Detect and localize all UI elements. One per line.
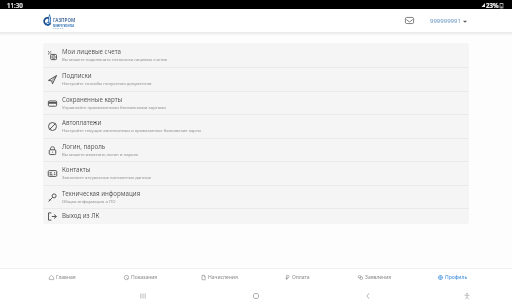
staticText: Сохраненные карты [62, 95, 123, 103]
staticText: Автоплатежи [62, 118, 102, 126]
button[interactable]: Оплата [258, 269, 336, 286]
staticText: Настройте текущие автоплатежи и привязан… [62, 127, 202, 133]
staticText: Профиль [445, 274, 468, 281]
staticText: Оплата [292, 274, 310, 281]
staticText: Т О М С К [53, 27, 64, 29]
button[interactable]: Показания [102, 269, 180, 286]
button[interactable]: Сохраненные карты [43, 91, 469, 115]
button[interactable]: Техническая информация [43, 185, 469, 209]
staticText: Логин, пароль [62, 142, 106, 150]
staticText: Контакты [62, 165, 91, 173]
button[interactable]: Recents [138, 291, 148, 301]
staticText: Выход из ЛК [62, 211, 100, 219]
staticText: Подписки [62, 71, 92, 79]
staticText: Управляйте привязанными банковскими карт… [62, 104, 166, 110]
button[interactable]: Back [363, 291, 373, 301]
button[interactable]: Accessibility [462, 291, 472, 301]
staticText: 11:30 [7, 1, 23, 9]
staticText: 999999991 [430, 17, 461, 25]
staticText: Главная [56, 274, 76, 281]
staticText: Вы можете изменить логин и пароль [62, 151, 139, 157]
staticText: 23% [486, 1, 499, 9]
button[interactable]: Контакты [43, 161, 469, 185]
button[interactable]: Messages [403, 14, 416, 27]
staticText: Заполните актуальные контактные данные [62, 174, 152, 180]
staticText: Заявления [365, 274, 392, 281]
button[interactable]: Профиль [414, 269, 492, 286]
button[interactable]: Начисления [180, 269, 258, 286]
button[interactable]: Мои лицевые счета [43, 43, 469, 67]
staticText: Показания [131, 274, 158, 281]
button[interactable]: Логин, пароль [43, 138, 469, 162]
button[interactable]: Home [251, 291, 261, 301]
button[interactable]: 999999991 [430, 17, 467, 25]
button[interactable]: Выход из ЛК [43, 208, 469, 224]
staticText: Вы можете подключить несколько лицевых с… [62, 56, 167, 62]
staticText: Общая информация о ПО [62, 198, 116, 204]
button[interactable]: Заявления [336, 269, 414, 286]
staticText: ГАЗПРОМ [53, 17, 76, 23]
button[interactable]: Автоплатежи [43, 114, 469, 138]
button[interactable]: Подписки [43, 67, 469, 91]
staticText: Настройте способы получения документов [62, 80, 152, 86]
staticText: Мои лицевые счета [62, 47, 121, 55]
staticText: Начисления [208, 274, 238, 281]
staticText: МЕЖРЕГИОНГАЗ [53, 24, 75, 27]
staticText: Техническая информация [62, 189, 141, 197]
button[interactable]: Главная [23, 269, 102, 286]
